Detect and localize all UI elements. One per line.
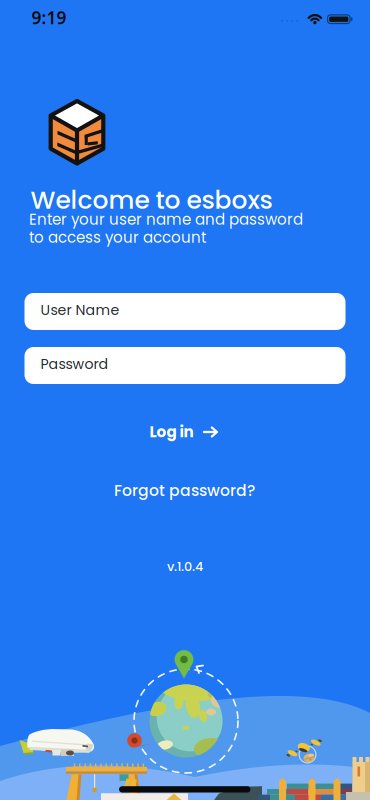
staticText: Forgot password? xyxy=(114,480,255,501)
button[interactable]: Log in xyxy=(149,421,218,443)
staticText: Welcome to esboxs xyxy=(30,182,272,217)
button[interactable]: User Name xyxy=(24,293,345,330)
staticText: Password xyxy=(40,354,108,374)
staticText: Log in xyxy=(149,421,193,443)
staticText: Enter your user name and password xyxy=(29,209,303,230)
staticText: to access your account xyxy=(29,227,206,248)
staticText: v.1.0.4 xyxy=(167,557,203,575)
staticText: 9:19 xyxy=(31,6,66,29)
button[interactable]: Password xyxy=(24,347,345,384)
button[interactable]: Forgot password? xyxy=(114,480,255,501)
staticText: User Name xyxy=(40,300,119,320)
